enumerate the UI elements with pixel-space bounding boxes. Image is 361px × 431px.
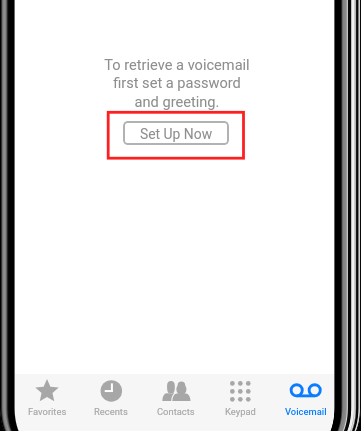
button[interactable]: Voicemail [273,374,338,417]
button[interactable]: Contacts [143,374,208,417]
button[interactable]: Set Up Now [123,121,229,145]
staticText: Favorites [28,406,67,417]
staticText: To retrieve a voicemail first set a pass… [104,56,250,110]
button[interactable]: Favorites [15,374,79,417]
staticText: Set Up Now [140,126,213,142]
staticText: Voicemail [285,406,327,417]
staticText: Keypad [225,406,256,417]
button[interactable]: Recents [79,374,143,417]
staticText: Contacts [157,406,195,417]
staticText: Recents [94,406,128,417]
button[interactable]: Keypad [208,374,273,417]
